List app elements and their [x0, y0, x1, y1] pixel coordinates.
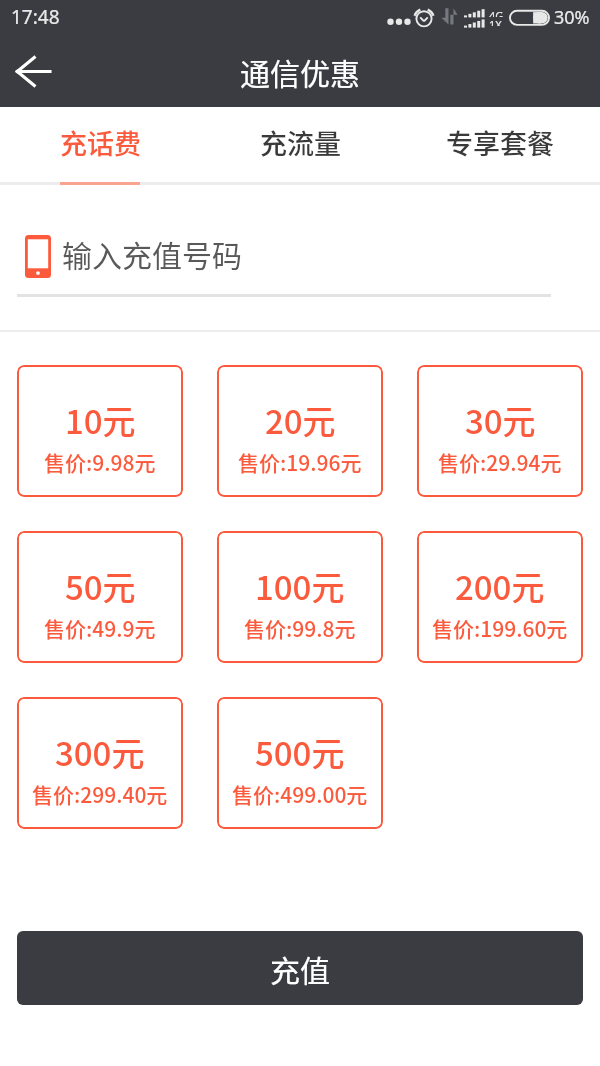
- staticText: 100元: [255, 562, 345, 610]
- button[interactable]: 专享套餐: [400, 107, 600, 185]
- staticText: 4G: [489, 8, 504, 17]
- staticText: 充值: [270, 947, 330, 990]
- button[interactable]: 30元: [417, 365, 583, 497]
- staticText: 售价:499.00元: [232, 779, 368, 809]
- button[interactable]: 50元: [17, 531, 183, 663]
- staticText: 输入充值号码: [62, 232, 242, 275]
- button[interactable]: 500元: [217, 697, 383, 829]
- staticText: 售价:299.40元: [32, 779, 168, 809]
- staticText: 售价:9.98元: [44, 447, 156, 477]
- staticText: 充流量: [260, 123, 341, 162]
- button[interactable]: 200元: [417, 531, 583, 663]
- staticText: 售价:99.8元: [244, 613, 356, 643]
- staticText: 10元: [65, 396, 136, 444]
- staticText: 500元: [255, 728, 345, 776]
- button[interactable]: 100元: [217, 531, 383, 663]
- button[interactable]: 20元: [217, 365, 383, 497]
- staticText: 20元: [265, 396, 336, 444]
- staticText: 通信优惠: [240, 50, 360, 93]
- staticText: 30元: [465, 396, 536, 444]
- staticText: 售价:29.94元: [438, 447, 562, 477]
- button[interactable]: 充话费: [0, 107, 200, 185]
- button[interactable]: 充值: [17, 931, 583, 1005]
- button[interactable]: 充流量: [200, 107, 400, 185]
- staticText: 充话费: [60, 123, 141, 162]
- staticText: 专享套餐: [446, 123, 554, 162]
- button[interactable]: 10元: [17, 365, 183, 497]
- staticText: 售价:19.96元: [238, 447, 362, 477]
- staticText: 17:48: [11, 4, 60, 30]
- staticText: 30%: [554, 5, 590, 30]
- staticText: 售价:199.60元: [432, 613, 568, 643]
- staticText: 300元: [55, 728, 145, 776]
- staticText: 1X: [489, 17, 502, 26]
- button[interactable]: 300元: [17, 697, 183, 829]
- button[interactable]: Back: [4, 36, 64, 107]
- staticText: 售价:49.9元: [44, 613, 156, 643]
- staticText: 50元: [65, 562, 136, 610]
- staticText: 200元: [455, 562, 545, 610]
